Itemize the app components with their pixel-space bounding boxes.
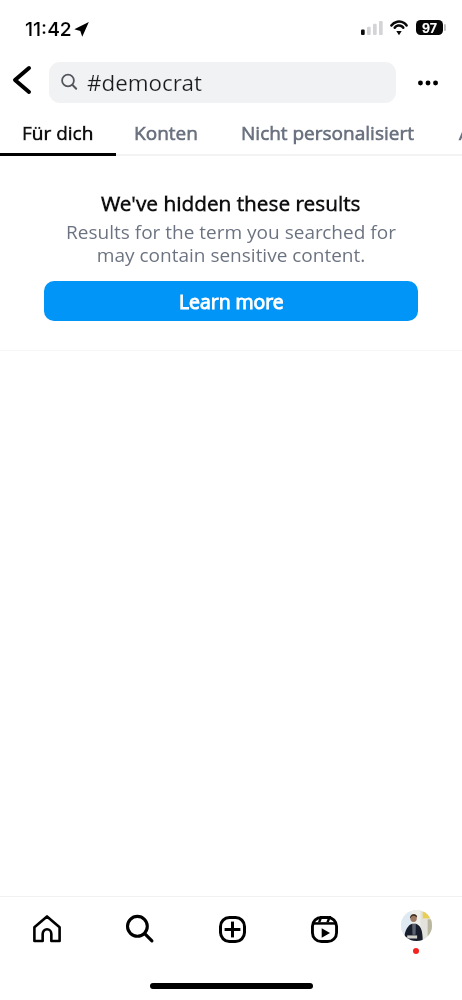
staticText: Results for the term you searched for ma… <box>0 219 462 268</box>
staticText: #democrat <box>87 67 202 98</box>
staticText: 97 <box>422 21 437 36</box>
staticText: Für dich <box>22 120 94 146</box>
button[interactable]: More options <box>404 60 452 106</box>
button[interactable]: Profile <box>370 897 462 961</box>
staticText: Learn more <box>179 288 284 314</box>
staticText: 11:42 <box>25 18 72 41</box>
button[interactable]: Reels <box>278 897 370 961</box>
staticText: Audio <box>459 120 462 146</box>
button[interactable]: Home <box>0 897 93 961</box>
button[interactable]: Konten <box>116 110 216 155</box>
button[interactable]: Back <box>0 57 44 103</box>
staticText: Konten <box>134 120 198 146</box>
button[interactable]: #democrat <box>49 62 396 103</box>
button[interactable]: Nicht personalisiert <box>216 110 438 155</box>
button[interactable]: Audio <box>410 110 462 155</box>
button[interactable]: Für dich <box>0 110 116 155</box>
button[interactable]: Search <box>93 897 186 961</box>
staticText: We've hidden these results <box>101 189 361 217</box>
staticText: Nicht personalisiert <box>241 120 414 146</box>
button[interactable]: Learn more <box>44 281 418 321</box>
button[interactable]: Create <box>186 897 278 961</box>
